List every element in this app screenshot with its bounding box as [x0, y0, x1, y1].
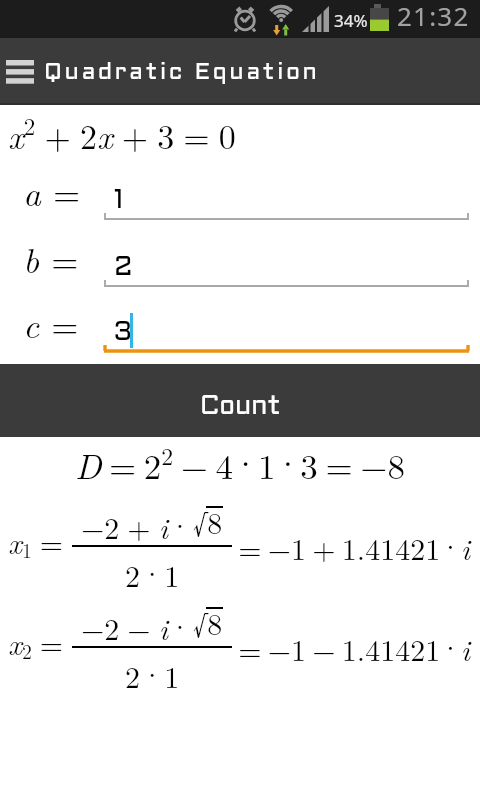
staticText: x2 = [8, 621, 72, 665]
staticText: Count [200, 395, 281, 419]
staticText: 1 [114, 189, 124, 214]
staticText: −2 + i . [81, 494, 193, 548]
staticText: 3 [114, 321, 132, 346]
staticText: = −1 − 1.41421 . i [232, 616, 471, 670]
staticText: 34% [334, 9, 368, 32]
staticText: 2 . 1 [125, 542, 180, 588]
staticText: 2 [114, 256, 133, 281]
staticText: = −1 + 1.41421 . i [232, 515, 471, 569]
staticText: √8 [193, 601, 223, 644]
staticText: −2 − i . [81, 595, 193, 649]
button[interactable] [104, 244, 469, 290]
staticText: b = [23, 232, 79, 284]
staticText: D = 22 − 4 . 1 . 3 = −8 [75, 427, 405, 490]
staticText: 2 . 1 [125, 643, 180, 689]
staticText: c = [23, 297, 79, 349]
button[interactable]: Count [0, 364, 480, 437]
button[interactable] [104, 177, 469, 223]
button[interactable] [104, 309, 469, 355]
staticText: x2 + 2x + 3 = 0 [8, 109, 236, 159]
button[interactable]: Quadratic Equation [0, 38, 480, 105]
staticText: 21:32 [397, 0, 470, 33]
staticText: x1 = [8, 520, 72, 564]
staticText: Quadratic Equation [44, 62, 320, 83]
staticText: a = [23, 165, 81, 217]
staticText: √8 [193, 500, 223, 543]
